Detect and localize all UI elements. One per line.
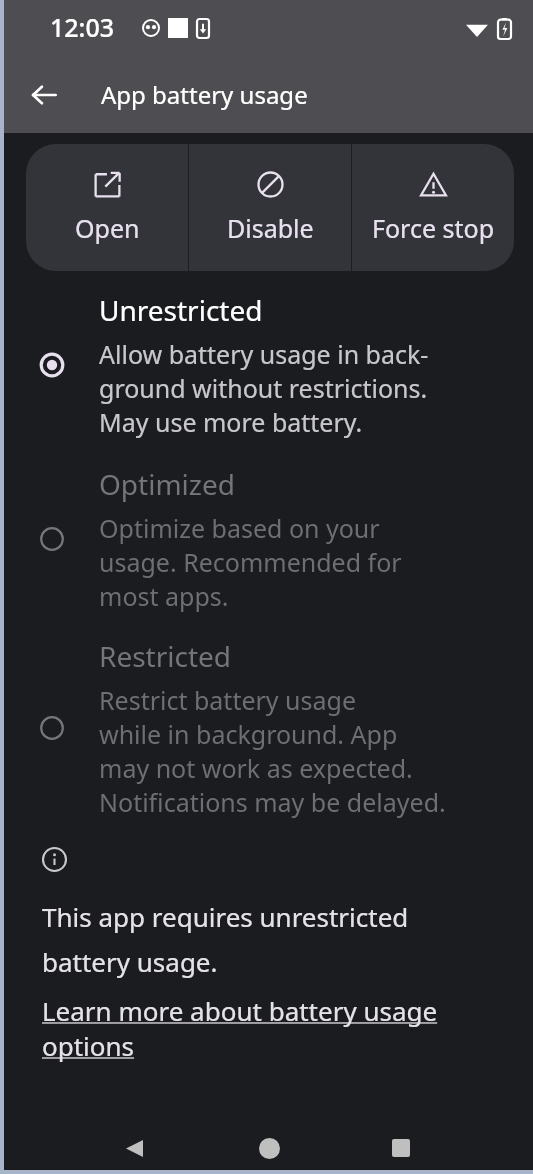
- staticText: Allow battery usage in back-: [99, 337, 429, 371]
- staticText: Disable: [227, 211, 314, 245]
- button[interactable]: Back: [20, 71, 68, 119]
- button[interactable]: Unrestricted: [4, 291, 533, 439]
- staticText: may not work as expected.: [99, 751, 413, 785]
- staticText: Force stop: [372, 211, 495, 245]
- staticText: options: [42, 1028, 135, 1063]
- button[interactable]: Back: [112, 1126, 156, 1170]
- staticText: battery usage.: [42, 944, 218, 979]
- staticText: App battery usage: [101, 78, 308, 111]
- staticText: Unrestricted: [99, 291, 263, 329]
- staticText: Notifications may be delayed.: [99, 785, 446, 819]
- button[interactable]: Home: [247, 1126, 291, 1170]
- button[interactable]: Learn more about battery usage: [42, 993, 438, 1063]
- staticText: Optimized: [99, 465, 235, 503]
- staticText: This app requires unrestricted: [42, 899, 409, 934]
- staticText: May use more battery.: [99, 405, 363, 439]
- button[interactable]: Disable: [189, 144, 351, 271]
- staticText: ground without restrictions.: [99, 371, 428, 405]
- staticText: Restricted: [99, 637, 232, 675]
- staticText: while in background. App: [99, 717, 398, 751]
- button[interactable]: Restricted: [4, 637, 533, 819]
- staticText: Open: [75, 211, 140, 245]
- button[interactable]: Open: [26, 144, 188, 271]
- button[interactable]: Recent apps: [379, 1126, 423, 1170]
- staticText: usage. Recommended for: [99, 545, 402, 579]
- button[interactable]: Force stop: [352, 144, 514, 271]
- staticText: Optimize based on your: [99, 511, 380, 545]
- staticText: Learn more about battery usage: [42, 993, 438, 1028]
- staticText: most apps.: [99, 579, 229, 613]
- button[interactable]: Optimized: [4, 465, 533, 613]
- staticText: Restrict battery usage: [99, 683, 357, 717]
- staticText: 12:03: [50, 10, 115, 44]
